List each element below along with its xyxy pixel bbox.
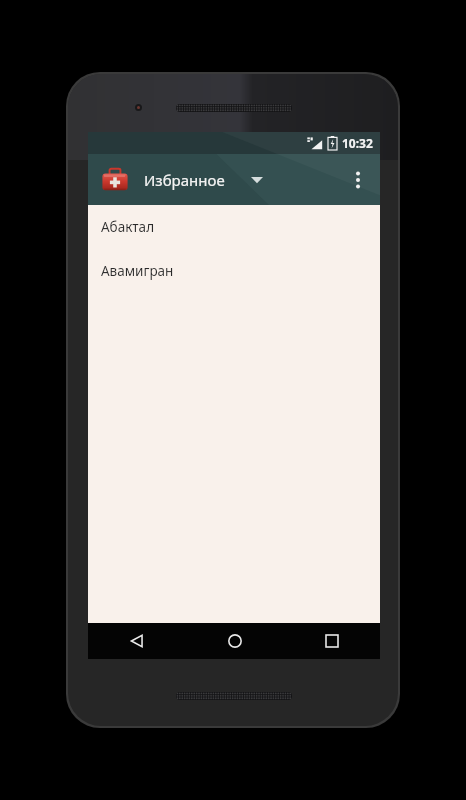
- staticText: Авамигран: [101, 262, 174, 280]
- button[interactable]: Абактал: [88, 205, 380, 249]
- button[interactable]: Home: [186, 623, 283, 659]
- button[interactable]: Back: [88, 623, 186, 659]
- staticText: 10:32: [342, 135, 373, 151]
- button[interactable]: Recent apps: [283, 623, 380, 659]
- staticText: Избранное: [144, 170, 225, 190]
- button[interactable]: More options: [340, 154, 376, 205]
- button[interactable]: Авамигран: [88, 249, 380, 293]
- staticText: Абактал: [101, 218, 155, 236]
- button[interactable]: Избранное: [96, 154, 340, 205]
